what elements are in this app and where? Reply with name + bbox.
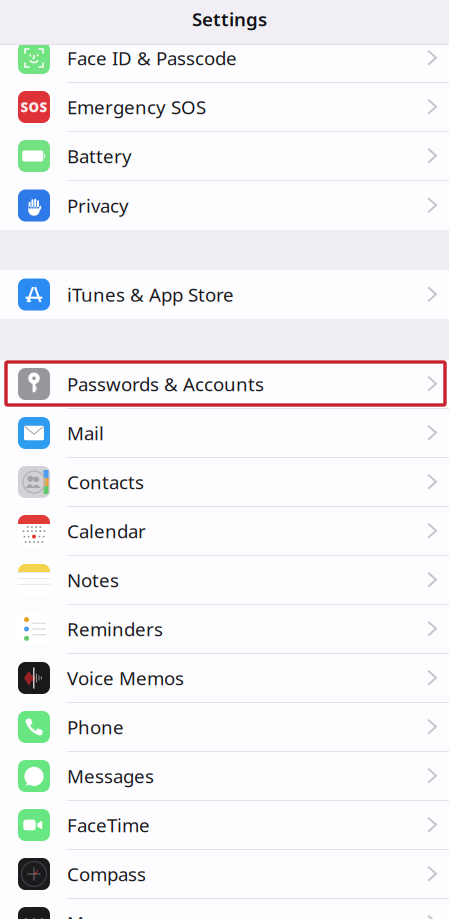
staticText: Measure [67, 911, 144, 919]
staticText: Compass [67, 862, 146, 886]
staticText: Phone [67, 715, 124, 739]
staticText: FaceTime [67, 813, 150, 837]
button[interactable]: Phone [0, 703, 449, 752]
button[interactable]: SOS [0, 83, 449, 132]
button[interactable]: Calendar [0, 507, 449, 556]
staticText: Battery [67, 144, 132, 168]
button[interactable]: Battery [0, 132, 449, 181]
staticText: Privacy [67, 193, 129, 218]
staticText: Face ID & Passcode [67, 46, 237, 70]
button[interactable]: Reminders [0, 605, 449, 654]
button[interactable]: iTunes & App Store [0, 270, 449, 319]
staticText: Contacts [67, 470, 144, 494]
staticText: Notes [67, 568, 119, 592]
button[interactable]: Contacts [0, 458, 449, 507]
staticText: Emergency SOS [67, 95, 206, 119]
staticText: Passwords & Accounts [67, 372, 264, 396]
button[interactable]: Compass [0, 850, 449, 899]
button[interactable]: Privacy [0, 181, 449, 230]
staticText: Calendar [67, 519, 146, 543]
staticText: iTunes & App Store [67, 282, 234, 307]
staticText: Voice Memos [67, 666, 184, 690]
staticText: Mail [67, 421, 104, 445]
button[interactable]: Mail [0, 409, 449, 458]
button[interactable]: Face ID & Passcode [0, 34, 449, 83]
staticText: Messages [67, 764, 154, 788]
button[interactable]: Notes [0, 556, 449, 605]
button[interactable]: Messages [0, 752, 449, 801]
staticText: Reminders [67, 617, 163, 641]
button[interactable]: Measure [0, 899, 449, 919]
staticText: Settings [192, 7, 267, 31]
button[interactable]: Voice Memos [0, 654, 449, 703]
button[interactable]: FaceTime [0, 801, 449, 850]
button[interactable]: Passwords & Accounts [0, 360, 449, 409]
staticText: SOS [20, 98, 47, 116]
